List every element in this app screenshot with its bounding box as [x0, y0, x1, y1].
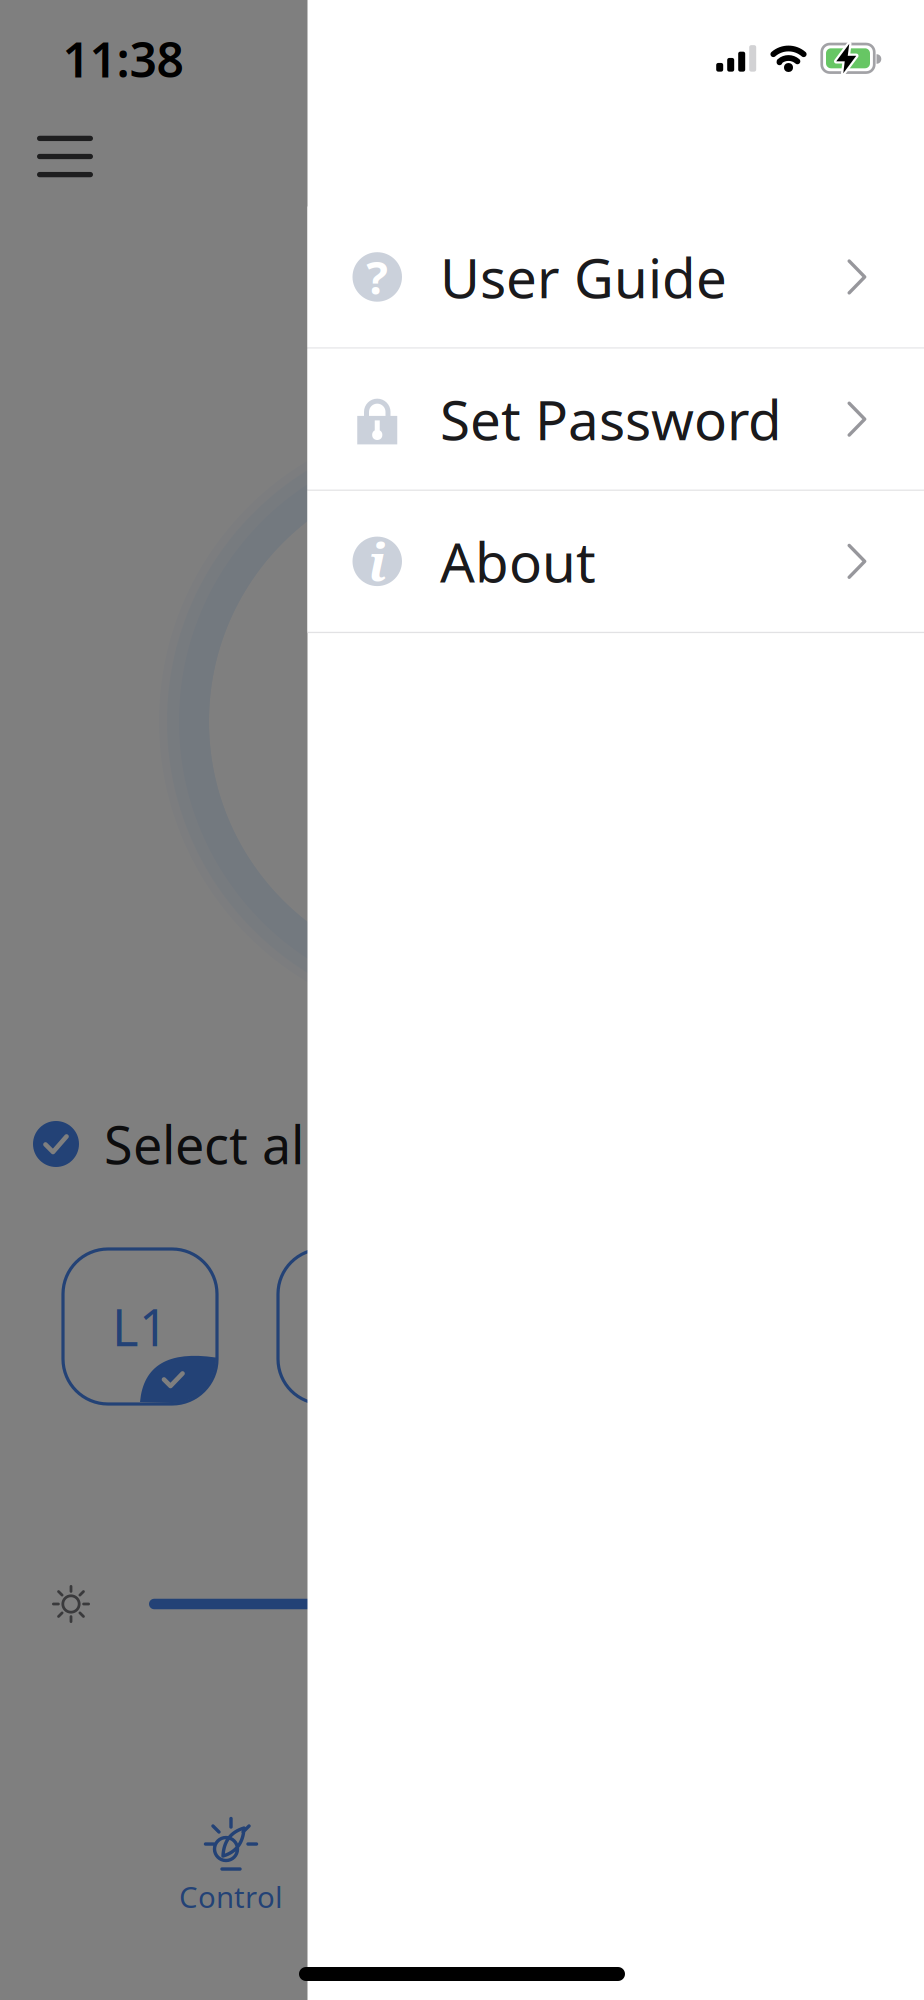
- staticText: L1: [112, 1293, 168, 1360]
- button[interactable]: Select all: [0, 1109, 317, 1179]
- staticText: i: [368, 527, 386, 596]
- button[interactable]: Menu: [37, 136, 93, 177]
- button[interactable]: ?: [307, 206, 924, 347]
- staticText: Select all: [104, 1109, 317, 1179]
- button[interactable]: L2: [278, 1249, 432, 1404]
- staticText: Control: [179, 1877, 283, 1916]
- button[interactable]: Set Password: [307, 349, 924, 490]
- button[interactable]: i: [307, 491, 924, 632]
- button[interactable]: Control: [179, 1812, 283, 1916]
- staticText: 11:38: [62, 27, 183, 91]
- staticText: Set Password: [440, 383, 782, 455]
- button[interactable]: L1: [63, 1249, 217, 1404]
- staticText: User Guide: [440, 241, 727, 313]
- staticText: About: [440, 525, 596, 598]
- staticText: ?: [366, 247, 388, 307]
